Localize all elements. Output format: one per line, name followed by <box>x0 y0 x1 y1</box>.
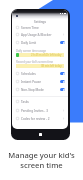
button[interactable]: Daily Limit <box>12 39 68 46</box>
staticText: Daily screen time usage <box>16 49 46 53</box>
button[interactable]: Schedules <box>12 70 68 77</box>
button[interactable]: Screen Time <box>12 24 68 31</box>
staticText: Tasks <box>21 100 29 104</box>
staticText: App Usage & Blocker <box>21 33 52 37</box>
staticText: Screen Time <box>21 26 39 30</box>
button[interactable]: Instant Pause <box>12 78 68 85</box>
button[interactable]: Tasks <box>12 98 68 105</box>
staticText: Record your kid's screen time <box>16 60 53 64</box>
button[interactable]: App Usage & Blocker <box>12 31 68 38</box>
staticText: Instant Pause <box>21 80 41 84</box>
staticText: Non-Stop Mode <box>21 88 44 92</box>
button[interactable]: Pending Invites - 3 <box>12 107 68 114</box>
staticText: Daily Limit <box>21 41 37 45</box>
button[interactable]: Non-Stop Mode <box>12 86 68 93</box>
staticText: Manage your kid's <box>8 150 75 160</box>
staticText: Settings <box>34 20 47 24</box>
staticText: Schedules <box>21 72 36 76</box>
staticText: screen time <box>20 160 63 170</box>
staticText: Codes for review - 2 <box>21 117 50 121</box>
staticText: Pending Invites - 3 <box>21 109 48 113</box>
button[interactable]: Codes for review - 2 <box>12 115 68 122</box>
staticText: 2 h 45 m of 4 h left today <box>31 53 62 57</box>
staticText: 38 min left today <box>41 64 62 68</box>
